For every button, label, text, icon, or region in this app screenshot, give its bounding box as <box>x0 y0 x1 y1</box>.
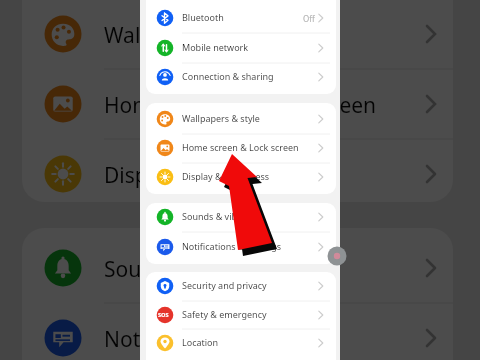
button[interactable]: Connection & sharing <box>146 62 336 74</box>
button[interactable]: Bluetooth <box>146 3 336 15</box>
staticText: Security and privacy <box>182 279 267 291</box>
staticText: Mobile network <box>182 41 249 53</box>
staticText: Off <box>303 13 315 24</box>
button[interactable]: Display & brightness <box>146 162 336 174</box>
button[interactable]: Mobile network <box>146 33 336 45</box>
staticText: Notifications & Settings <box>182 240 282 252</box>
staticText: Display & brightness <box>104 161 308 190</box>
button[interactable]: Home screen & Lock screen <box>146 133 336 145</box>
staticText: Home screen & Lock screen <box>182 141 299 153</box>
staticText: Wallpapers & style <box>182 112 260 124</box>
button[interactable]: Location <box>146 328 336 340</box>
button[interactable]: Sounds & vibration <box>146 202 336 214</box>
button[interactable]: Wallpapers & style <box>146 104 336 116</box>
staticText: Connection & sharing <box>182 70 274 82</box>
staticText: Location <box>182 336 219 348</box>
staticText: Sounds & vibration <box>182 210 263 222</box>
staticText: SOS <box>158 311 169 319</box>
button[interactable]: Notifications & Settings <box>146 232 336 244</box>
staticText: Bluetooth <box>182 11 224 23</box>
staticText: Wallpapers & style <box>104 21 286 50</box>
staticText: Sound & vibration <box>104 255 282 284</box>
staticText: Display & brightness <box>182 170 270 182</box>
staticText: Home screen & Lock screen <box>104 91 377 120</box>
button[interactable]: Security and privacy <box>146 271 336 283</box>
button[interactable]: Safety & emergency <box>146 300 336 312</box>
other: Pointer arrow <box>0 0 480 360</box>
staticText: Safety & emergency <box>182 308 267 320</box>
staticText: Notifications & Settings <box>104 325 336 354</box>
